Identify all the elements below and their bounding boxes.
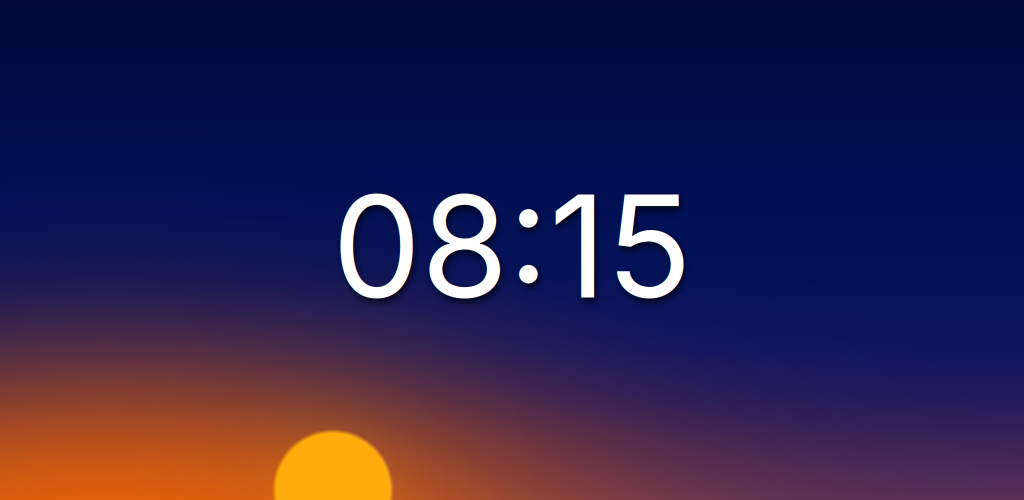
staticText: 08:15: [332, 160, 692, 331]
